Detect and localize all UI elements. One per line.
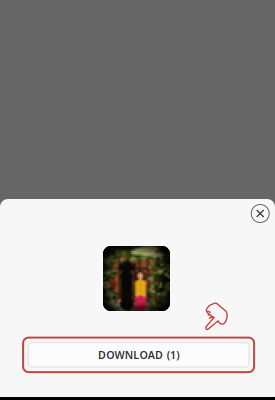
button[interactable]: Close (246, 199, 274, 227)
staticText: DOWNLOAD (1) (98, 348, 179, 362)
button[interactable]: DOWNLOAD (1) (23, 337, 255, 373)
